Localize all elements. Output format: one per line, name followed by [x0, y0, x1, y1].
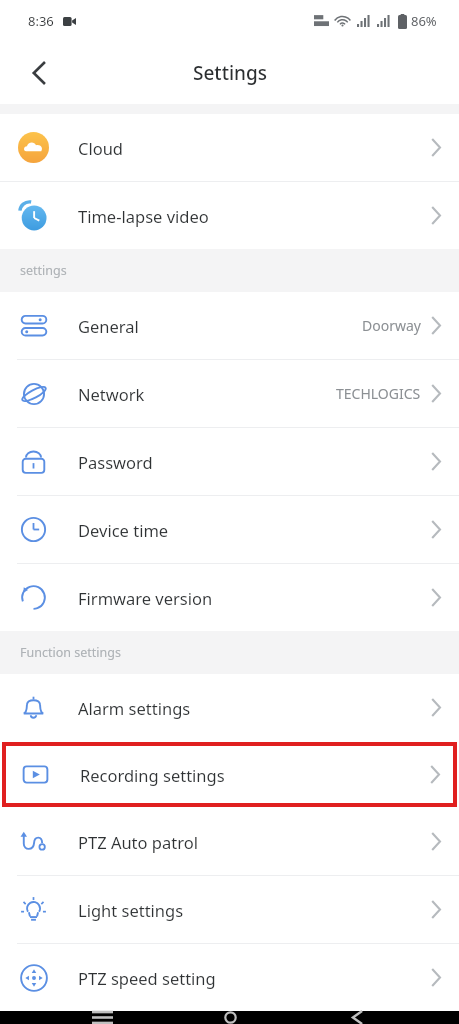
- button[interactable]: PTZ speed setting: [0, 944, 459, 1011]
- staticText: Settings: [193, 60, 267, 86]
- staticText: PTZ Auto patrol: [78, 831, 198, 853]
- staticText: Cloud: [78, 137, 124, 159]
- button[interactable]: Alarm settings: [0, 674, 459, 741]
- staticText: Recording settings: [80, 764, 225, 786]
- staticText: 86%: [411, 12, 437, 30]
- button[interactable]: Device time: [0, 496, 459, 563]
- button[interactable]: Firmware version: [0, 564, 459, 631]
- button[interactable]: Time-lapse video: [0, 182, 459, 249]
- staticText: PTZ speed setting: [78, 967, 216, 989]
- button[interactable]: Network: [0, 360, 459, 427]
- staticText: TECHLOGICS: [336, 384, 421, 403]
- staticText: Alarm settings: [78, 697, 191, 719]
- button[interactable]: General: [0, 292, 459, 359]
- button[interactable]: Password: [0, 428, 459, 495]
- button[interactable]: Recent apps: [76, 1011, 128, 1024]
- staticText: Function settings: [20, 644, 121, 661]
- staticText: Light settings: [78, 899, 184, 921]
- staticText: 8:36: [28, 12, 54, 30]
- button[interactable]: Light settings: [0, 876, 459, 943]
- button[interactable]: PTZ Auto patrol: [0, 808, 459, 875]
- button[interactable]: Back: [331, 1011, 383, 1024]
- staticText: Time-lapse video: [78, 205, 209, 227]
- button[interactable]: Back: [16, 50, 62, 96]
- button[interactable]: Cloud: [0, 114, 459, 181]
- staticText: Doorway: [362, 316, 421, 335]
- staticText: Network: [78, 383, 145, 405]
- staticText: General: [78, 315, 139, 337]
- staticText: Password: [78, 451, 153, 473]
- button[interactable]: Recording settings: [6, 746, 453, 803]
- button[interactable]: Home: [204, 1011, 256, 1024]
- staticText: Device time: [78, 519, 169, 541]
- staticText: Firmware version: [78, 587, 213, 609]
- staticText: settings: [20, 262, 67, 279]
